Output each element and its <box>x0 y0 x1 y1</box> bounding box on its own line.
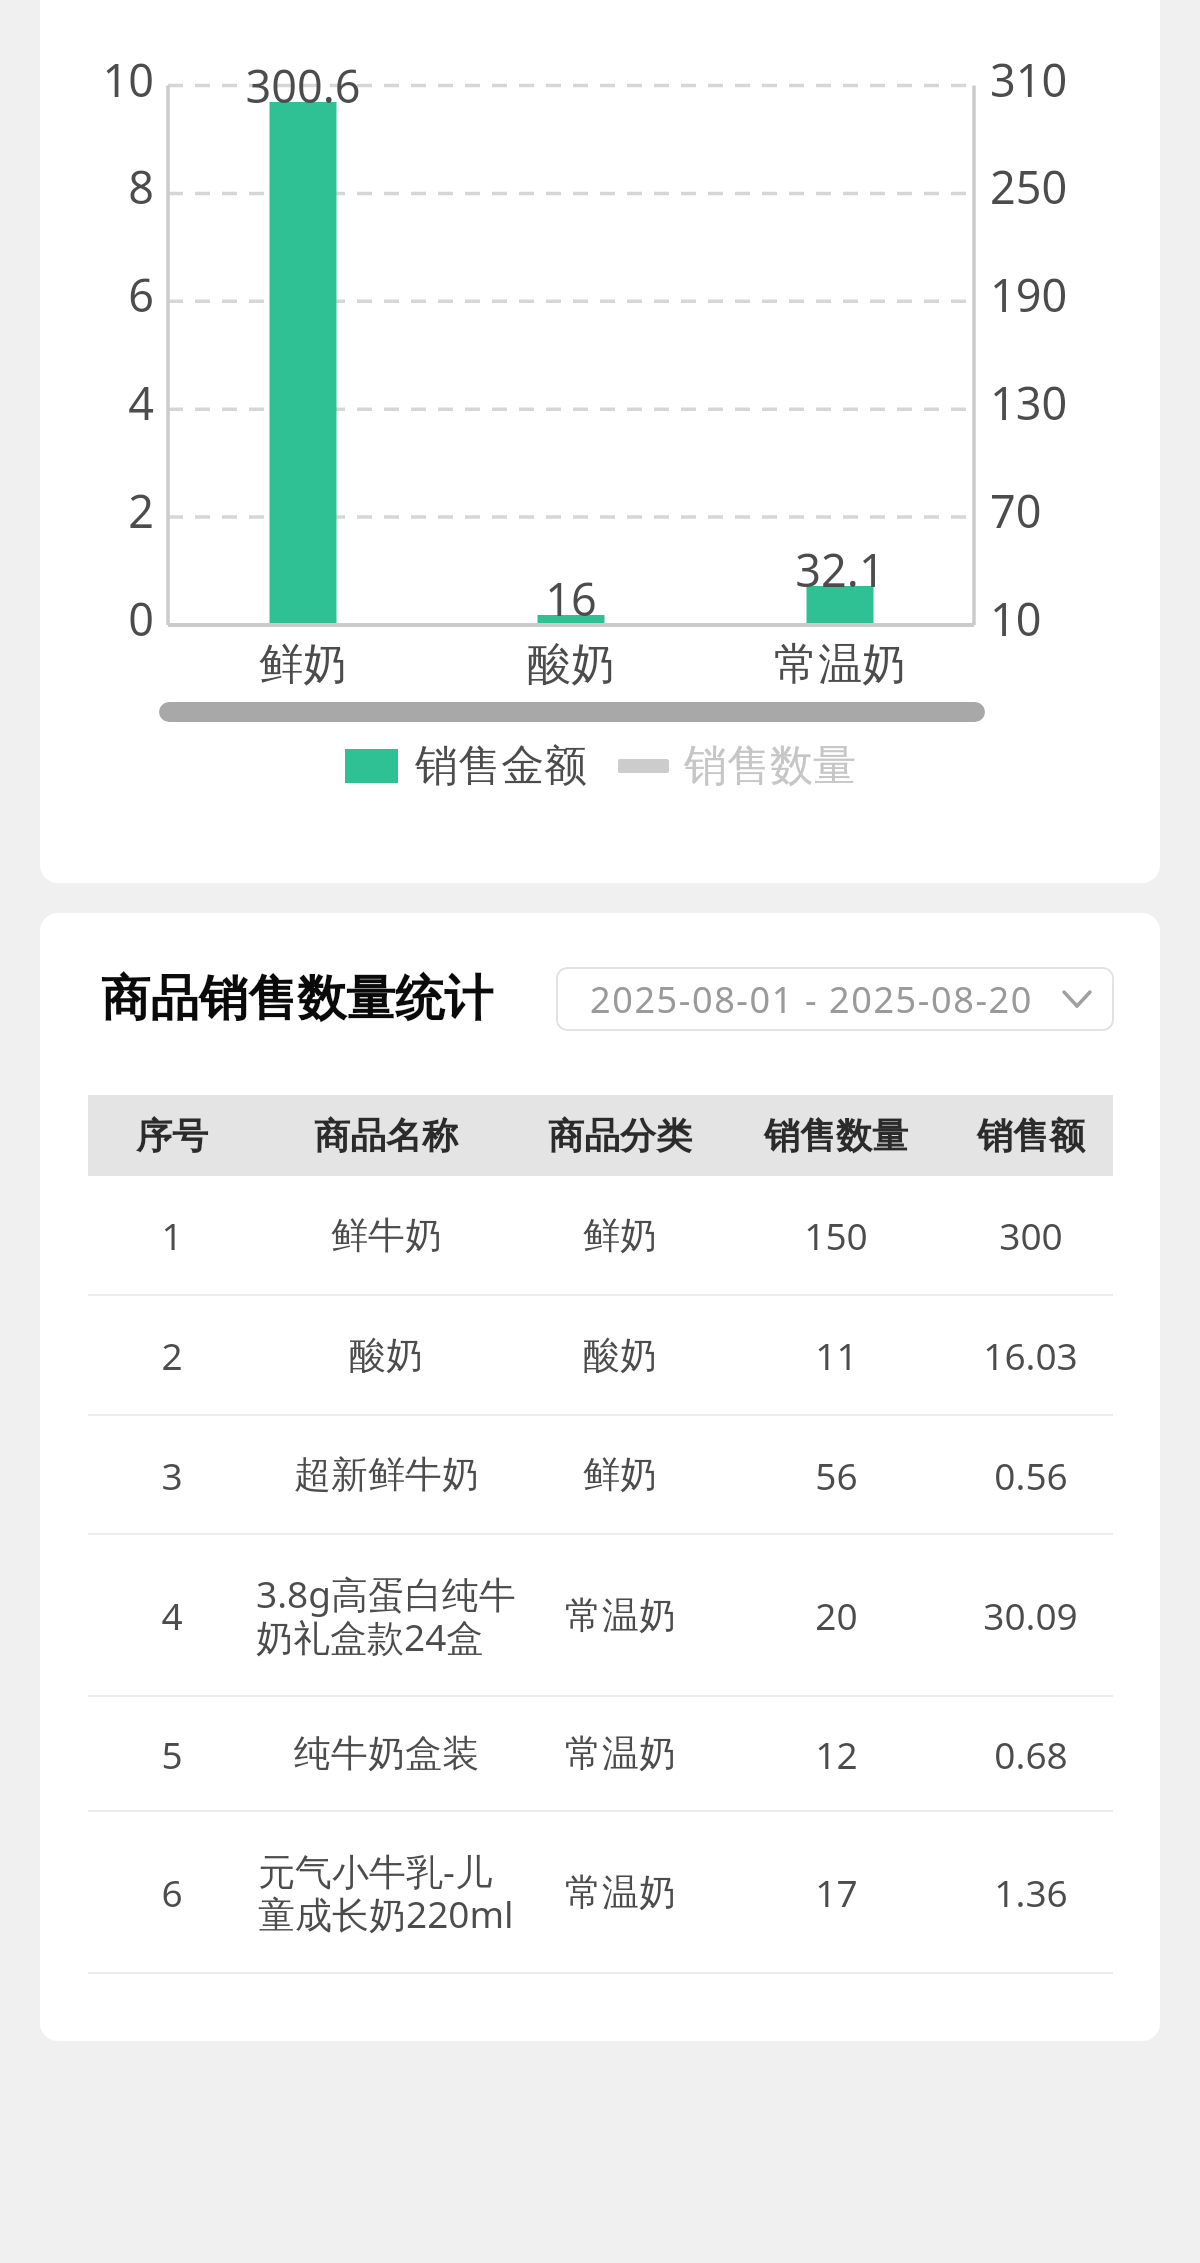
staticText: 酸奶 <box>421 637 721 692</box>
staticText: 鲜奶 <box>583 1212 657 1259</box>
staticText: 5 <box>161 1729 183 1779</box>
staticText: 6 <box>42 264 154 325</box>
staticText: 2025-08-01 - 2025-08-20 <box>590 975 1033 1024</box>
staticText: 17 <box>815 1867 858 1917</box>
staticText: 常温奶 <box>565 1869 676 1916</box>
staticText: 150 <box>804 1210 868 1260</box>
staticText: 12 <box>815 1729 858 1779</box>
staticText: 11 <box>815 1330 858 1380</box>
staticText: 1 <box>161 1210 183 1260</box>
staticText: 70 <box>990 480 1042 541</box>
button[interactable]: 2025-08-01 - 2025-08-20 <box>556 967 1114 1031</box>
staticText: 酸奶 <box>583 1332 657 1379</box>
staticText: 6 <box>161 1867 183 1917</box>
staticText: 酸奶 <box>349 1332 423 1379</box>
staticText: 3 <box>161 1450 183 1500</box>
staticText: 310 <box>990 49 1068 110</box>
staticText: 0.68 <box>994 1729 1068 1779</box>
button[interactable]: 6 <box>88 1812 1113 1972</box>
button[interactable]: 1 <box>88 1176 1113 1294</box>
button[interactable]: 序号 <box>88 1095 1113 1176</box>
staticText: 190 <box>990 264 1068 325</box>
staticText: 销售额 <box>977 1113 1085 1158</box>
staticText: 0.56 <box>994 1450 1068 1500</box>
staticText: 商品分类 <box>548 1113 692 1158</box>
staticText: 4 <box>42 372 154 433</box>
staticText: 鲜奶 <box>153 637 453 692</box>
staticText: 商品销售数量统计 <box>101 968 493 1030</box>
staticText: 常温奶 <box>690 637 990 692</box>
staticText: 元气小牛乳-儿 童成长奶220ml <box>258 1853 514 1939</box>
staticText: 10 <box>990 588 1042 649</box>
button[interactable]: 2 <box>88 1296 1113 1414</box>
staticText: 销售数量 <box>764 1113 908 1158</box>
staticText: 超新鲜牛奶 <box>294 1451 479 1498</box>
staticText: 30.09 <box>983 1590 1078 1640</box>
staticText: 2 <box>161 1330 183 1380</box>
staticText: 8 <box>42 156 154 217</box>
staticText: 3.8g高蛋白纯牛 奶礼盒款24盒 <box>256 1576 516 1662</box>
staticText: 0 <box>42 588 154 649</box>
staticText: 2 <box>42 480 154 541</box>
staticText: 序号 <box>136 1113 208 1158</box>
button[interactable]: 5 <box>88 1697 1113 1810</box>
staticText: 常温奶 <box>565 1730 676 1777</box>
staticText: 4 <box>161 1590 183 1640</box>
staticText: 32.1 <box>690 539 990 600</box>
staticText: 商品名称 <box>314 1113 458 1158</box>
staticText: 56 <box>815 1450 858 1500</box>
staticText: 16.03 <box>983 1330 1078 1380</box>
button[interactable]: 3 <box>88 1416 1113 1533</box>
staticText: 鲜奶 <box>583 1451 657 1498</box>
staticText: 1.36 <box>994 1867 1068 1917</box>
staticText: 300 <box>999 1210 1063 1260</box>
button[interactable]: 销售数量 <box>618 735 856 797</box>
staticText: 销售数量 <box>684 739 856 793</box>
other: Open date range picker <box>1055 981 1099 1017</box>
staticText: 10 <box>42 49 154 110</box>
staticText: 16 <box>421 568 721 629</box>
staticText: 250 <box>990 156 1068 217</box>
button[interactable]: 4 <box>88 1535 1113 1695</box>
button[interactable]: 销售金额 <box>345 735 587 797</box>
staticText: 常温奶 <box>565 1592 676 1639</box>
staticText: 300.6 <box>153 55 453 116</box>
staticText: 销售金额 <box>415 739 587 793</box>
staticText: 20 <box>815 1590 858 1640</box>
staticText: 130 <box>990 372 1068 433</box>
staticText: 纯牛奶盒装 <box>294 1730 479 1777</box>
staticText: 鲜牛奶 <box>331 1212 442 1259</box>
